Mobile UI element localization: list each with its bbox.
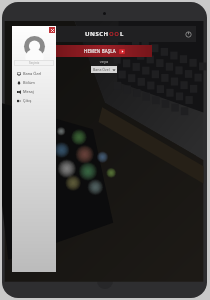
staticText: Çıkış xyxy=(23,98,32,103)
staticText: OO xyxy=(109,30,120,38)
staticText: Bana Özel xyxy=(23,71,42,76)
staticText: Bölüm xyxy=(23,80,35,85)
button[interactable]: Power xyxy=(185,31,192,38)
button[interactable]: HEMEN BAŞLA xyxy=(56,45,152,57)
staticText: Mesaj xyxy=(23,89,34,94)
button[interactable]: Bana Özel xyxy=(17,69,56,78)
button[interactable]: Bana Özel xyxy=(91,66,117,73)
button[interactable]: Mesaj xyxy=(17,87,56,96)
staticText: Seçiniz xyxy=(29,61,40,65)
staticText: HEMEN BAŞLA xyxy=(84,48,116,54)
button[interactable]: Close xyxy=(49,27,55,33)
staticText: veya xyxy=(12,59,196,64)
staticText: Bana Özel xyxy=(93,67,110,72)
staticText: L xyxy=(120,30,124,38)
button[interactable]: Bölüm xyxy=(17,78,56,87)
button[interactable]: Çıkış xyxy=(17,96,56,105)
button[interactable]: Seçiniz xyxy=(14,60,54,66)
staticText: UNSCH xyxy=(85,30,109,38)
